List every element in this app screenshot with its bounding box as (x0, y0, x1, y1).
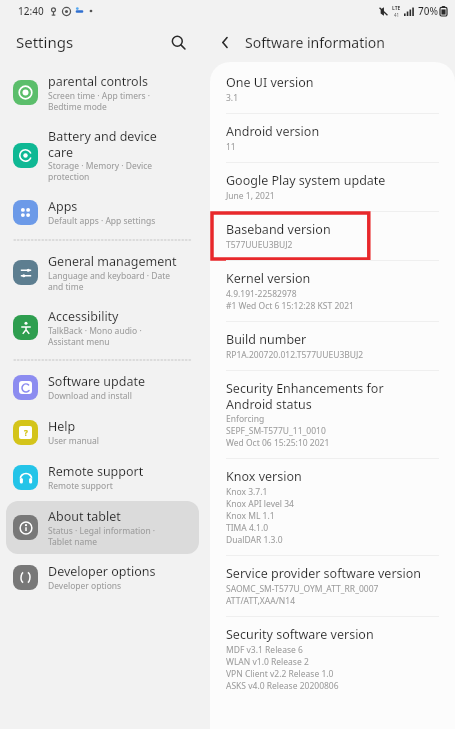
staticText: Kernel version (226, 270, 311, 287)
staticText: 3.1 (226, 92, 239, 104)
staticText: Build number (226, 331, 307, 348)
staticText: Download and install (48, 390, 132, 402)
button[interactable]: Back (211, 28, 239, 56)
staticText: LTE (392, 5, 401, 12)
button[interactable]: One UI version (210, 65, 455, 113)
staticText: 12:40 (18, 4, 44, 18)
button[interactable]: Battery and device care (6, 121, 199, 189)
staticText: Remote support (48, 480, 113, 492)
staticText: Settings (16, 32, 74, 52)
staticText: DualDAR 1.3.0 (226, 534, 283, 546)
button[interactable]: Accessibility (6, 301, 199, 354)
staticText: Wed Oct 06 15:25:10 2021 (226, 437, 330, 449)
staticText: 70% (418, 4, 438, 18)
button[interactable]: General management (6, 246, 199, 299)
button[interactable]: Android version (210, 114, 455, 162)
staticText: Developer options (48, 580, 122, 592)
staticText: VPN Client v2.2 Release 1.0 (226, 668, 334, 680)
staticText: SEPF_SM-T577U_11_0010 (226, 425, 326, 437)
staticText: Language and keyboard · Date and time (48, 270, 171, 292)
staticText: Security software version (226, 626, 374, 643)
staticText: Google Play system update (226, 172, 386, 189)
staticText: Status · Legal information · Tablet name (48, 525, 156, 547)
staticText: RP1A.200720.012.T577UUEU3BUJ2 (226, 349, 364, 361)
staticText: One UI version (226, 74, 314, 91)
staticText: Software update (48, 373, 145, 390)
staticText: 4.9.191-22582978 (226, 288, 297, 300)
staticText: T577UUEU3BUJ2 (226, 239, 293, 251)
staticText: 11 (226, 141, 236, 153)
button[interactable]: Build number (210, 322, 455, 370)
button[interactable]: Remote support (6, 456, 199, 499)
staticText: User manual (48, 435, 99, 447)
button[interactable]: Kernel version (210, 261, 455, 321)
staticText: Knox ML 1.1 (226, 510, 275, 522)
button[interactable]: parental controls (6, 66, 199, 119)
staticText: June 1, 2021 (226, 190, 275, 202)
staticText: Software information (245, 33, 385, 52)
staticText: Help (48, 418, 76, 435)
button[interactable]: Baseband version (210, 212, 455, 260)
staticText: Android version (226, 123, 320, 140)
staticText: Storage · Memory · Device protection (48, 160, 153, 182)
staticText: Service provider software version (226, 565, 422, 582)
staticText: WLAN v1.0 Release 2 (226, 656, 309, 668)
button[interactable]: ? (6, 411, 199, 454)
staticText: About tablet (48, 508, 121, 525)
button[interactable]: About tablet (6, 501, 199, 554)
staticText: #1 Wed Oct 6 15:12:28 KST 2021 (226, 300, 354, 312)
staticText: Remote support (48, 463, 144, 480)
staticText: Accessibility (48, 308, 119, 325)
staticText: Knox version (226, 468, 302, 485)
button[interactable]: Security software version (210, 617, 455, 701)
staticText: TalkBack · Mono audio · Assistant menu (48, 325, 142, 347)
button[interactable]: Apps (6, 191, 199, 234)
staticText: Default apps · App settings (48, 215, 156, 227)
staticText: Screen time · App timers · Bedtime mode (48, 90, 151, 112)
staticText: MDF v3.1 Release 6 (226, 644, 303, 656)
button[interactable]: Service provider software version (210, 556, 455, 616)
button[interactable]: Knox version (210, 459, 455, 555)
staticText: General management (48, 253, 177, 270)
staticText: ATT/ATT,XAA/N14 (226, 595, 296, 607)
staticText: Knox 3.7.1 (226, 486, 268, 498)
staticText: Enforcing (226, 413, 265, 425)
staticText: Knox API level 34 (226, 498, 294, 510)
staticText: 41 (394, 12, 400, 18)
staticText: ASKS v4.0 Release 20200806 (226, 680, 339, 692)
button[interactable]: Search (165, 29, 191, 55)
staticText: Security Enhancements for Android status (226, 380, 384, 412)
staticText: ? (24, 427, 28, 438)
staticText: Developer options (48, 563, 156, 580)
staticText: TIMA 4.1.0 (226, 522, 269, 534)
staticText: parental controls (48, 73, 148, 90)
staticText: Baseband version (226, 221, 331, 238)
staticText: Battery and device care (48, 128, 157, 160)
staticText: SAOMC_SM-T577U_OYM_ATT_RR_0007 (226, 583, 379, 595)
staticText: Apps (48, 198, 78, 215)
button[interactable]: Software update (6, 366, 199, 409)
button[interactable]: Security Enhancements for Android status (210, 371, 455, 458)
button[interactable]: Developer options (6, 556, 199, 599)
button[interactable]: Google Play system update (210, 163, 455, 211)
